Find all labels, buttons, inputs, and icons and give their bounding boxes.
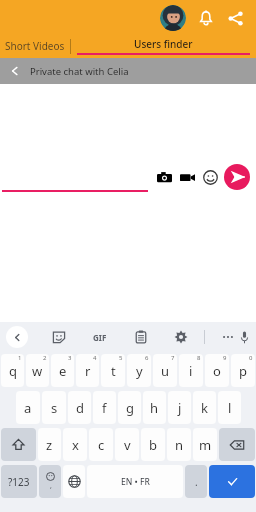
other: Back bbox=[6, 62, 24, 80]
staticText: n bbox=[175, 436, 184, 454]
button[interactable]: f bbox=[93, 391, 116, 424]
button[interactable]: n bbox=[167, 428, 191, 461]
staticText: h bbox=[150, 399, 159, 417]
button[interactable]: v bbox=[115, 428, 139, 461]
staticText: 0 bbox=[249, 354, 253, 362]
staticText: EN • FR bbox=[121, 476, 150, 488]
button[interactable]: . bbox=[185, 465, 207, 498]
button[interactable]: q bbox=[1, 354, 24, 387]
button[interactable]: Shift bbox=[1, 428, 36, 461]
button[interactable]: Camera bbox=[154, 167, 174, 187]
button[interactable]: Back bbox=[6, 326, 28, 348]
button[interactable]: Short Videos bbox=[0, 39, 70, 53]
staticText: d bbox=[76, 399, 84, 417]
button[interactable]: Voice input bbox=[239, 326, 250, 348]
staticText: l bbox=[228, 399, 232, 417]
button[interactable]: Settings bbox=[170, 326, 192, 348]
staticText: t bbox=[111, 362, 116, 380]
button[interactable]: h bbox=[143, 391, 166, 424]
button[interactable]: More options bbox=[217, 326, 239, 348]
button[interactable]: Emoji bbox=[200, 167, 220, 187]
staticText: 6 bbox=[145, 354, 149, 362]
staticText: 5 bbox=[119, 354, 123, 362]
staticText: g bbox=[126, 399, 134, 417]
button[interactable]: j bbox=[168, 391, 191, 424]
button[interactable]: ?123 bbox=[1, 465, 37, 498]
button[interactable]: r bbox=[76, 354, 99, 387]
staticText: f bbox=[102, 399, 107, 417]
staticText: s bbox=[51, 399, 58, 417]
staticText: 7 bbox=[171, 354, 175, 362]
staticText: v bbox=[124, 436, 131, 454]
staticText: 9 bbox=[223, 354, 227, 362]
staticText: Private chat with Celia bbox=[30, 65, 129, 78]
staticText: , bbox=[50, 481, 52, 491]
staticText: c bbox=[98, 436, 105, 454]
button[interactable]: Send bbox=[222, 162, 252, 192]
button[interactable]: Clipboard bbox=[130, 326, 152, 348]
staticText: Users finder bbox=[134, 37, 193, 51]
staticText: 3 bbox=[68, 354, 72, 362]
button[interactable]: l bbox=[218, 391, 241, 424]
button[interactable]: u bbox=[153, 354, 177, 387]
staticText: i bbox=[189, 362, 193, 380]
button[interactable]: Users finder bbox=[71, 37, 256, 55]
staticText: p bbox=[239, 362, 247, 380]
button[interactable]: Profile bbox=[160, 5, 186, 31]
staticText: q bbox=[9, 362, 17, 380]
button[interactable]: EN • FR bbox=[87, 465, 183, 498]
staticText: k bbox=[201, 399, 208, 417]
button[interactable]: Emoji bbox=[39, 465, 61, 498]
staticText: w bbox=[32, 362, 43, 380]
button[interactable]: b bbox=[141, 428, 165, 461]
button[interactable]: p bbox=[231, 354, 255, 387]
staticText: GIF bbox=[93, 332, 107, 343]
button[interactable]: g bbox=[118, 391, 141, 424]
staticText: a bbox=[24, 399, 32, 417]
button[interactable]: s bbox=[42, 391, 66, 424]
button[interactable]: GIF bbox=[88, 325, 112, 349]
staticText: z bbox=[46, 436, 53, 454]
button[interactable]: o bbox=[205, 354, 229, 387]
staticText: 2 bbox=[43, 354, 47, 362]
button[interactable]: c bbox=[89, 428, 113, 461]
staticText: 8 bbox=[197, 354, 201, 362]
staticText: e bbox=[59, 362, 67, 380]
button[interactable] bbox=[2, 162, 148, 192]
button[interactable]: Backspace bbox=[219, 428, 255, 461]
button[interactable]: z bbox=[38, 428, 61, 461]
button[interactable]: a bbox=[16, 391, 40, 424]
button[interactable]: w bbox=[26, 354, 49, 387]
staticText: o bbox=[213, 362, 221, 380]
button[interactable]: Notifications bbox=[192, 4, 220, 32]
staticText: ?123 bbox=[8, 475, 30, 489]
staticText: x bbox=[72, 436, 79, 454]
staticText: m bbox=[199, 436, 212, 454]
button[interactable]: y bbox=[127, 354, 151, 387]
staticText: b bbox=[149, 436, 157, 454]
button[interactable]: d bbox=[68, 391, 91, 424]
button[interactable]: k bbox=[193, 391, 216, 424]
button[interactable]: x bbox=[63, 428, 87, 461]
button[interactable]: i bbox=[179, 354, 203, 387]
staticText: 1 bbox=[18, 354, 22, 362]
button[interactable]: Video bbox=[177, 167, 197, 187]
staticText: u bbox=[161, 362, 170, 380]
staticText: Short Videos bbox=[5, 39, 65, 53]
button[interactable]: Stickers bbox=[48, 326, 70, 348]
button[interactable]: Back bbox=[0, 58, 256, 84]
button[interactable]: t bbox=[101, 354, 125, 387]
button[interactable]: Change language bbox=[63, 465, 85, 498]
staticText: r bbox=[85, 362, 91, 380]
button[interactable]: Enter bbox=[209, 465, 255, 498]
staticText: y bbox=[136, 362, 143, 380]
button[interactable]: Share bbox=[220, 3, 250, 33]
staticText: . bbox=[195, 475, 198, 489]
staticText: 4 bbox=[93, 354, 97, 362]
button[interactable]: e bbox=[51, 354, 74, 387]
button[interactable]: m bbox=[193, 428, 217, 461]
staticText: j bbox=[178, 399, 182, 417]
